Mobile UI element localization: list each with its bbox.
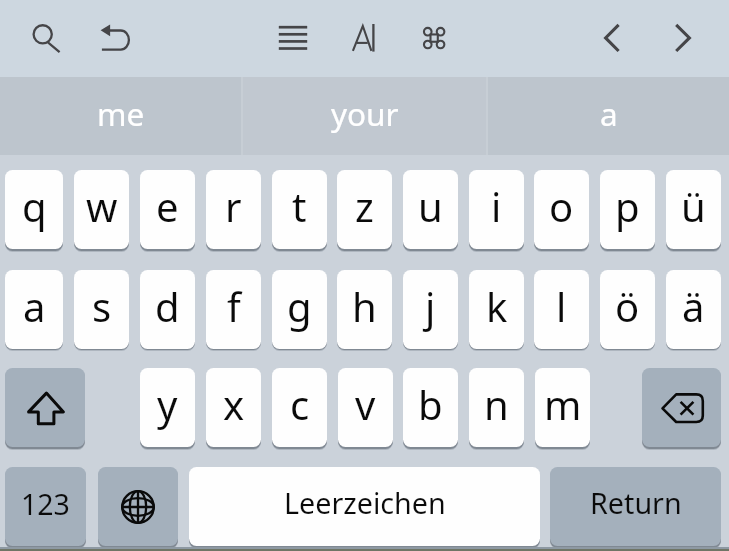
button[interactable]: y [140,368,195,447]
staticText: r [225,179,242,233]
button[interactable]: Command [414,14,454,64]
staticText: u [418,179,443,233]
button[interactable]: ü [666,170,721,249]
button[interactable]: n [469,368,524,447]
staticText: v [355,377,376,431]
staticText: q [22,179,47,233]
button[interactable]: c [272,368,327,447]
button[interactable]: l [534,270,589,349]
button[interactable]: j [403,270,458,349]
staticText: y [157,377,178,431]
staticText: f [227,279,241,333]
button[interactable]: p [600,170,655,249]
button[interactable]: e [140,170,195,249]
button[interactable]: Next keyboard [98,467,178,546]
staticText: l [556,279,567,333]
staticText: c [290,377,310,431]
staticText: i [491,179,502,233]
button[interactable]: Text format [346,8,386,68]
staticText: n [484,377,509,431]
button[interactable]: List [272,8,316,68]
button[interactable]: ö [600,270,655,349]
button[interactable]: ä [666,270,721,349]
button[interactable]: f [206,270,261,349]
staticText: ä [682,279,705,333]
button[interactable]: z [337,170,392,249]
staticText: 123 [21,485,70,524]
staticText: a [600,92,618,135]
staticText: j [425,279,436,333]
staticText: ö [615,279,640,333]
button[interactable]: your [242,77,487,155]
staticText: me [97,92,145,135]
button[interactable]: h [337,270,392,349]
button[interactable]: u [403,170,458,249]
button[interactable]: s [74,270,129,349]
button[interactable]: t [272,170,327,249]
staticText: x [223,377,245,431]
staticText: a [23,279,46,333]
button[interactable]: Leerzeichen [189,467,540,546]
button[interactable]: v [338,368,393,447]
button[interactable]: Backspace [642,368,721,447]
button[interactable]: d [140,270,195,349]
staticText: s [92,279,112,333]
staticText: w [86,179,118,233]
button[interactable]: Previous [596,12,640,64]
staticText: e [156,179,179,233]
button[interactable]: w [74,170,129,249]
staticText: h [352,279,377,333]
staticText: m [544,377,582,431]
button[interactable]: x [206,368,261,447]
button[interactable]: a [487,77,729,155]
staticText: p [615,179,640,233]
staticText: g [287,279,312,333]
button[interactable]: q [5,170,63,249]
staticText: ü [681,179,706,233]
button[interactable]: k [469,270,524,349]
button[interactable]: m [535,368,590,447]
button[interactable]: Undo [94,8,140,68]
button[interactable]: i [469,170,524,249]
staticText: o [549,179,574,233]
staticText: t [292,179,307,233]
button[interactable]: g [272,270,327,349]
button[interactable]: me [0,77,242,155]
staticText: b [418,377,443,431]
button[interactable]: Shift [5,368,85,447]
button[interactable]: b [403,368,458,447]
button[interactable]: Search [18,8,66,68]
button[interactable]: 123 [5,467,86,546]
staticText: Return [590,483,682,522]
button[interactable]: r [206,170,261,249]
button[interactable]: o [534,170,589,249]
staticText: Leerzeichen [284,483,446,522]
button[interactable]: a [5,270,63,349]
staticText: z [355,179,374,233]
staticText: k [486,279,508,333]
staticText: your [331,92,399,135]
button[interactable]: Next [668,12,712,64]
button[interactable]: Return [550,467,721,546]
staticText: d [155,279,180,333]
